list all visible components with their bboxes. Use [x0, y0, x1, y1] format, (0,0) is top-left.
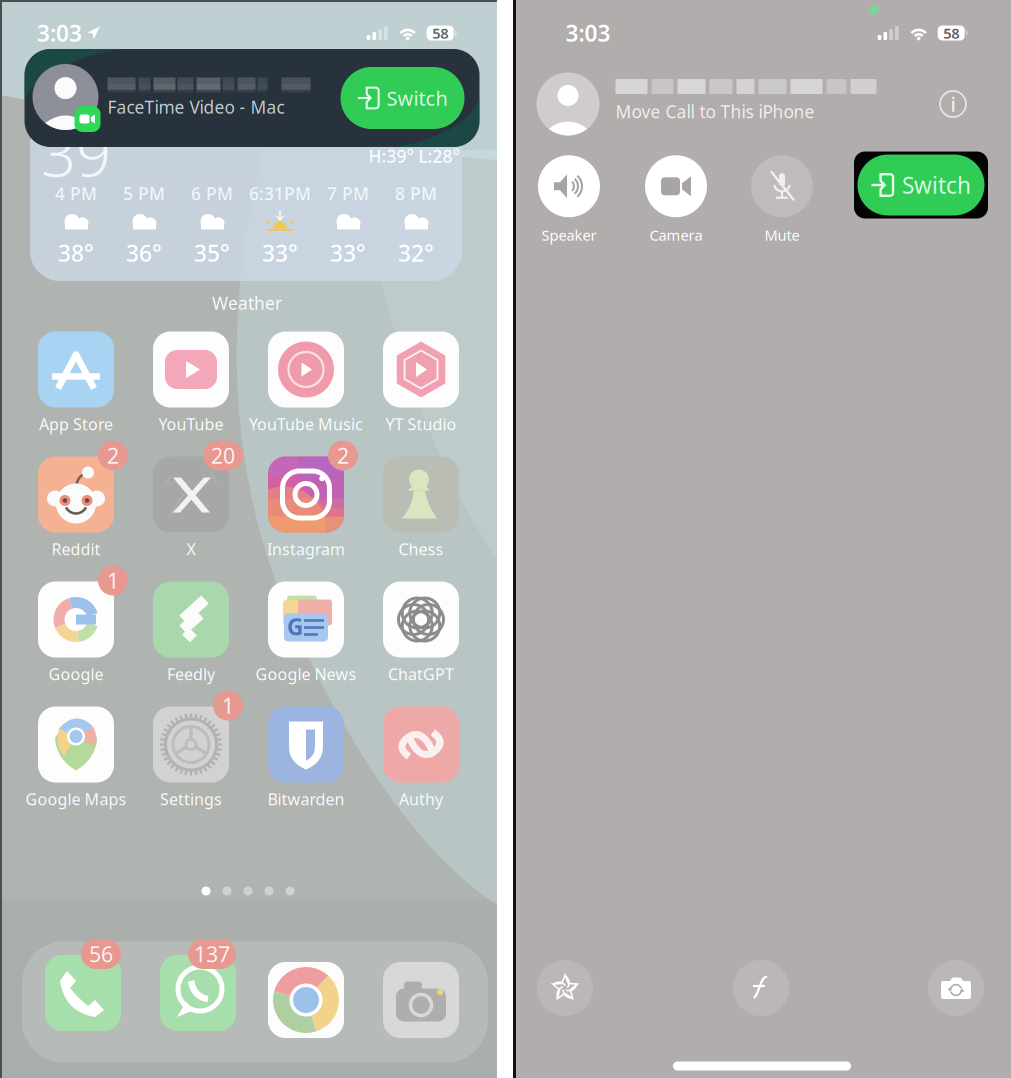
button[interactable]: App Store [12, 331, 140, 432]
button[interactable]: 2 [12, 456, 140, 557]
button[interactable]: FaceTime Video - Mac [24, 49, 479, 147]
button[interactable]: Bitwarden [242, 706, 370, 807]
staticText: FaceTime Video - Mac [107, 95, 284, 118]
staticText: Bitwarden [267, 788, 344, 810]
button[interactable]: Flip camera [928, 960, 984, 1016]
button[interactable]: 2 [242, 456, 370, 557]
staticText: 2 [337, 441, 349, 470]
staticText: G [287, 611, 303, 641]
staticText: 56 [89, 940, 113, 968]
staticText: 58 [943, 23, 959, 43]
staticText: Authy [399, 788, 443, 810]
button[interactable]: Feedly [127, 581, 255, 682]
staticText: 137 [194, 940, 230, 968]
button[interactable]: YouTube [127, 331, 255, 432]
button[interactable]: YT Studio [357, 331, 485, 432]
button[interactable]: 20 [127, 456, 255, 557]
staticText: 35° [194, 238, 230, 268]
staticText: Instagram [267, 538, 345, 560]
staticText: Switch [386, 85, 447, 111]
button[interactable]: 137 [146, 955, 236, 1045]
staticText: 4 PM [55, 182, 97, 205]
staticText: Settings [160, 788, 222, 810]
button[interactable]: 56 [31, 955, 121, 1045]
staticText: 2 [107, 441, 119, 470]
staticText: Google [48, 663, 103, 685]
button[interactable]: 39 [30, 115, 462, 281]
staticText: Move Call to This iPhone [615, 100, 814, 123]
staticText: 39 [41, 112, 111, 194]
staticText: YouTube Music [249, 413, 363, 435]
staticText: 7 PM [327, 182, 369, 205]
button[interactable]: YouTube Music [242, 331, 370, 432]
staticText: 33° [330, 238, 366, 268]
staticText: 8 PM [395, 182, 437, 205]
staticText: Reddit [51, 538, 100, 560]
staticText: 1 [222, 691, 234, 720]
button[interactable]: ChatGPT [357, 581, 485, 682]
button[interactable]: 1 [12, 581, 140, 682]
button[interactable]: 1 [127, 706, 255, 807]
button[interactable] [261, 955, 351, 1045]
staticText: Camera [649, 225, 702, 245]
staticText: 38° [58, 238, 94, 268]
staticText: YT Studio [385, 413, 456, 435]
staticText: Google News [255, 663, 356, 685]
button[interactable]: Speaker [521, 151, 617, 249]
staticText: ChatGPT [388, 663, 454, 685]
staticText: 6 PM [191, 182, 233, 205]
staticText: Feedly [167, 663, 215, 685]
staticText: X [186, 538, 195, 560]
staticText: App Store [39, 413, 113, 435]
button[interactable]: Filters [733, 960, 789, 1016]
staticText: Speaker [541, 225, 596, 245]
button[interactable]: Chess [357, 456, 485, 557]
button[interactable]: Effects [537, 960, 593, 1016]
staticText: 5 PM [123, 182, 165, 205]
button[interactable]: Mute [734, 151, 830, 249]
staticText: i [950, 91, 955, 117]
button[interactable]: Call info [940, 91, 966, 117]
staticText: Switch [902, 170, 971, 200]
staticText: 3:03 [37, 18, 82, 48]
staticText: 33° [262, 238, 298, 268]
staticText: 1 [107, 566, 119, 595]
button[interactable]: Authy [357, 706, 485, 807]
button[interactable]: G [242, 581, 370, 682]
staticText: Mute [764, 225, 799, 245]
staticText: 20 [211, 441, 235, 470]
staticText: YouTube [158, 413, 223, 435]
staticText: 58 [432, 23, 448, 43]
button[interactable] [376, 955, 466, 1045]
staticText: Weather [212, 291, 282, 314]
staticText: H:39° L:28° [368, 144, 459, 167]
staticText: 3:03 [565, 18, 610, 48]
staticText: 36° [126, 238, 162, 268]
button[interactable]: Google Maps [12, 706, 140, 807]
staticText: Chess [398, 538, 443, 560]
staticText: 32° [398, 238, 434, 268]
staticText: 6:31PM [249, 182, 311, 205]
button[interactable]: Camera [628, 151, 724, 249]
staticText: Google Maps [25, 788, 126, 810]
button[interactable]: Switch [854, 151, 988, 218]
